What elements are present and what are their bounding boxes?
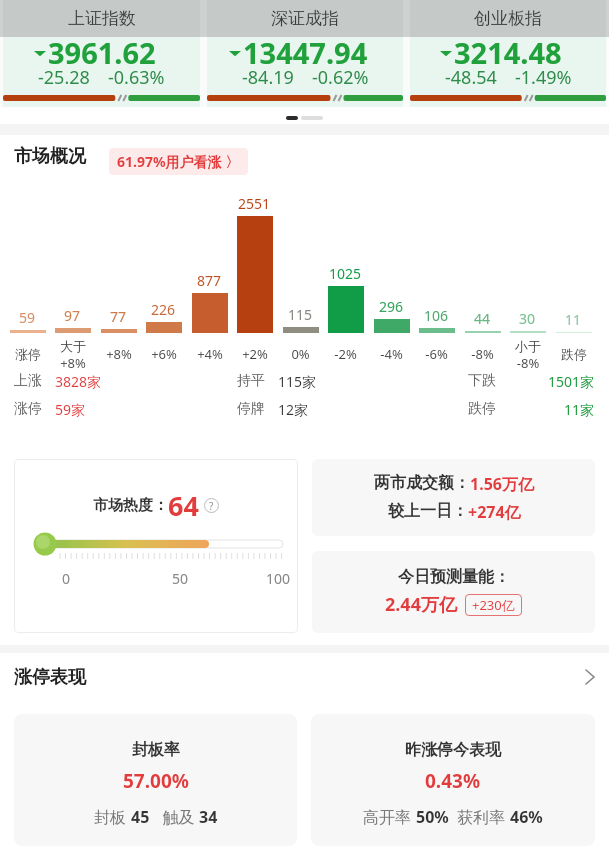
button[interactable]: 两市成交额：	[312, 459, 595, 536]
button[interactable]: 封板率	[14, 714, 297, 846]
staticText: -0.63%	[108, 65, 165, 90]
staticText: -48.54	[445, 65, 497, 90]
staticText: 3828家	[55, 372, 102, 391]
staticText: -2%	[334, 345, 357, 363]
staticText: 大于 +8%	[60, 338, 86, 371]
button[interactable]: 今日预测量能：	[312, 551, 595, 633]
staticText: 59	[19, 308, 36, 327]
staticText: 2551	[238, 194, 271, 213]
staticText: 877	[197, 271, 222, 290]
staticText: 小于 -8%	[515, 338, 541, 371]
staticText: 226	[151, 300, 176, 319]
staticText: 较上一日：	[388, 501, 468, 521]
staticText: ?	[209, 499, 214, 513]
staticText: 1501家	[548, 372, 595, 391]
button[interactable]: 上证指数	[3, 0, 200, 107]
staticText: 115家	[278, 372, 317, 391]
staticText: 3961.62	[48, 33, 156, 72]
staticText: 深证成指	[271, 8, 339, 29]
staticText: 11	[565, 310, 582, 329]
staticText: 获利率	[449, 806, 510, 828]
staticText: 跌停	[468, 400, 496, 418]
staticText: 13447.94	[243, 33, 368, 72]
staticText: -4%	[380, 345, 403, 363]
staticText: 30	[519, 309, 536, 328]
staticText: 106	[424, 306, 449, 325]
button[interactable]: 昨涨停今表现	[311, 714, 595, 846]
staticText: 100	[266, 569, 291, 588]
staticText: 0.43%	[425, 768, 481, 794]
staticText: 跌停	[561, 346, 587, 362]
staticText: 两市成交额：	[374, 473, 470, 493]
staticText: 封板	[94, 806, 131, 828]
staticText: 创业板指	[474, 8, 542, 29]
staticText: 12家	[278, 400, 309, 419]
staticText: 触及	[150, 806, 199, 828]
staticText: -6%	[425, 345, 448, 363]
staticText: 0	[62, 569, 71, 588]
staticText: +8%	[106, 345, 132, 363]
staticText: 34	[199, 806, 218, 828]
staticText: 61.97%用户看涨 〉	[117, 152, 240, 171]
staticText: 涨停	[15, 346, 41, 362]
button[interactable]: 涨停表现	[14, 664, 595, 690]
staticText: 50%	[416, 806, 449, 828]
staticText: +274亿	[468, 501, 521, 523]
staticText: -1.49%	[515, 65, 572, 90]
staticText: 涨停表现	[14, 666, 86, 689]
button[interactable]: 市场热度：	[14, 459, 298, 633]
staticText: 1025	[329, 264, 362, 283]
staticText: 上证指数	[68, 8, 136, 29]
staticText: 3214.48	[454, 33, 562, 72]
staticText: 2.44万亿	[385, 592, 457, 617]
staticText: 59家	[55, 400, 86, 419]
staticText: 高开率	[363, 806, 416, 828]
staticText: 46%	[510, 806, 543, 828]
staticText: 45	[131, 806, 150, 828]
staticText: 296	[379, 297, 404, 316]
staticText: 停牌	[237, 400, 265, 418]
staticText: 涨停	[14, 400, 42, 418]
staticText: +2%	[242, 345, 268, 363]
staticText: 今日预测量能：	[398, 567, 510, 587]
staticText: 77	[110, 307, 127, 326]
staticText: -8%	[471, 345, 494, 363]
staticText: 115	[288, 305, 313, 324]
button[interactable]: 61.97%用户看涨 〉	[109, 148, 248, 175]
staticText: 1.56万亿	[470, 473, 534, 495]
staticText: -25.28	[38, 65, 90, 90]
staticText: 50	[172, 569, 189, 588]
staticText: 97	[64, 306, 81, 325]
staticText: 0%	[291, 345, 310, 363]
staticText: +230亿	[472, 596, 515, 614]
staticText: +6%	[151, 345, 177, 363]
staticText: 持平	[237, 372, 265, 390]
staticText: 市场概况	[14, 145, 86, 168]
staticText: 57.00%	[123, 768, 189, 794]
staticText: 上涨	[14, 372, 42, 390]
staticText: -84.19	[242, 65, 294, 90]
staticText: -0.62%	[312, 65, 369, 90]
staticText: 下跌	[468, 372, 496, 390]
staticText: 64	[168, 487, 199, 524]
staticText: 44	[474, 309, 491, 328]
staticText: +4%	[197, 345, 223, 363]
staticText: 昨涨停今表现	[405, 740, 501, 760]
button[interactable]: 创业板指	[410, 0, 606, 107]
staticText: 封板率	[132, 740, 180, 760]
button[interactable]: 深证成指	[207, 0, 403, 107]
staticText: 市场热度：	[93, 496, 168, 515]
staticText: 11家	[564, 400, 595, 419]
